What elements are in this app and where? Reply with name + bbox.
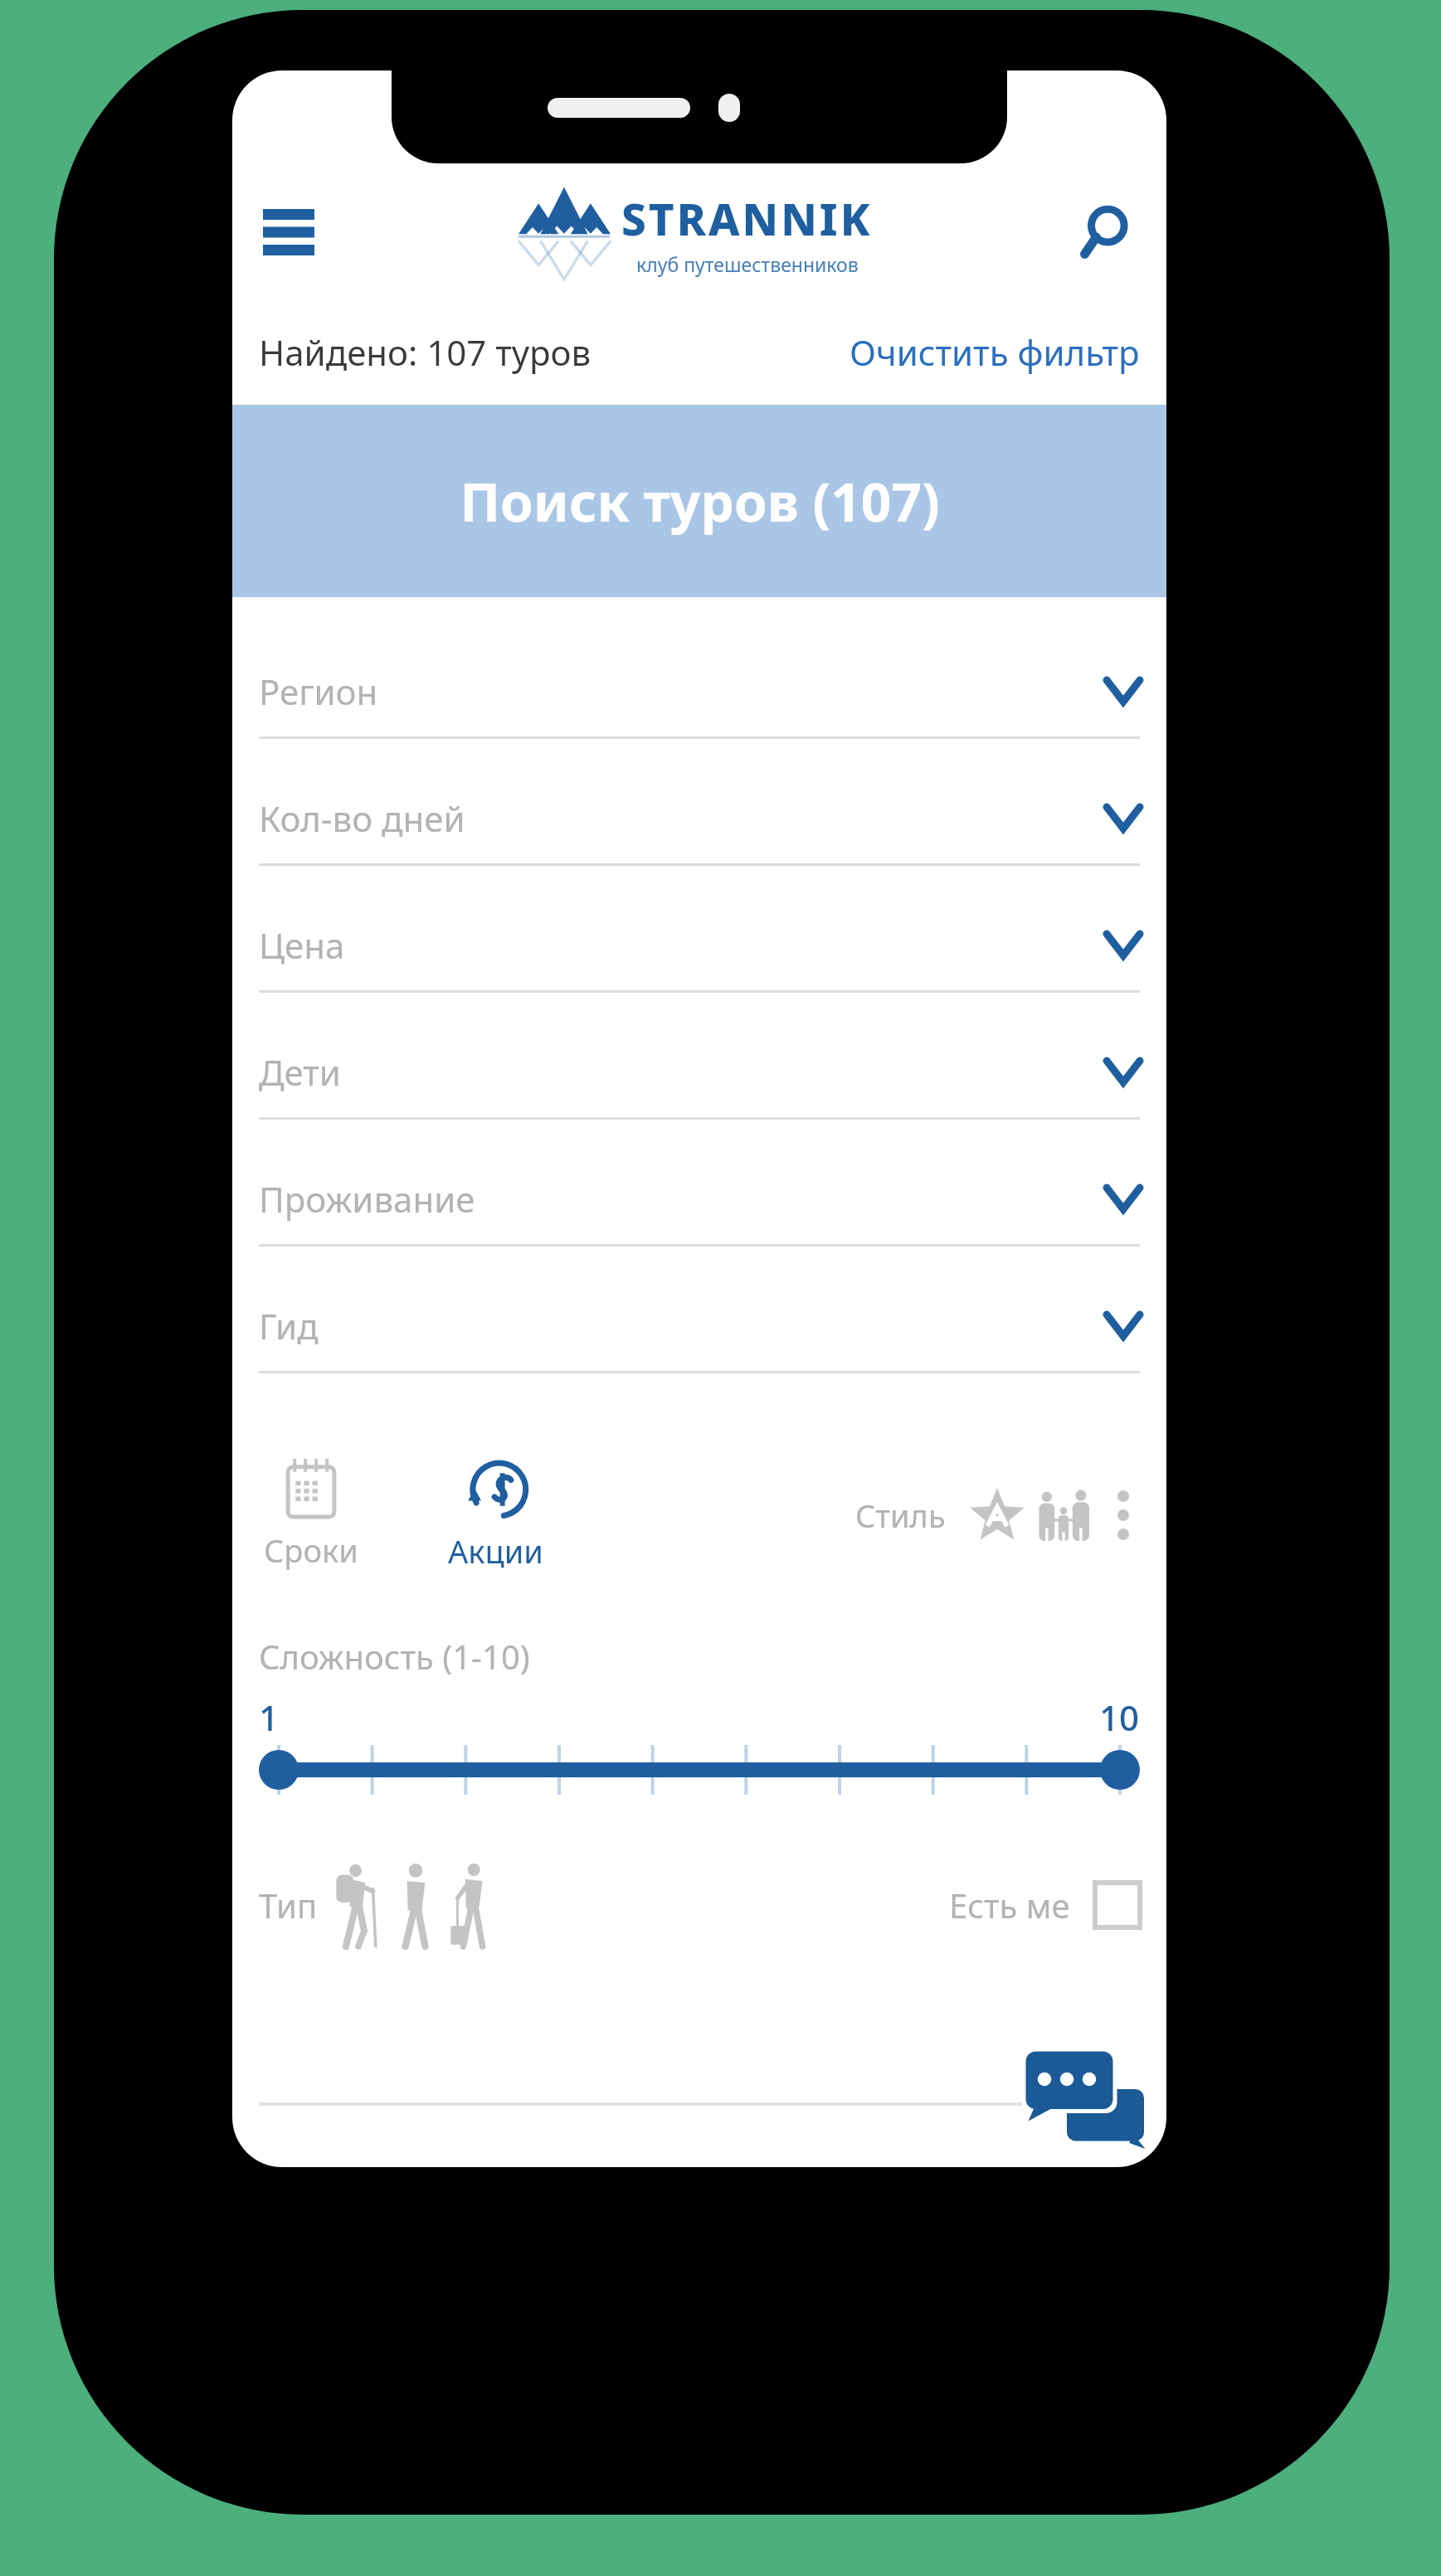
- button[interactable]: Поиск: [1062, 191, 1145, 274]
- button[interactable]: Регион: [259, 645, 1140, 772]
- button[interactable]: Тур с чемоданом: [449, 1862, 497, 1948]
- staticText: Есть ме: [949, 1883, 1070, 1927]
- staticText: STRANNIK: [621, 188, 873, 248]
- button[interactable]: Чат: [1022, 2049, 1146, 2149]
- button[interactable]: Акции: [443, 1458, 548, 1572]
- staticText: Сроки: [264, 1529, 358, 1572]
- staticText: 10: [1099, 1694, 1140, 1741]
- button[interactable]: Пеший поход: [334, 1862, 382, 1948]
- button[interactable]: Стиль семья: [1034, 1485, 1093, 1545]
- staticText: Сложность (1-10): [259, 1634, 530, 1679]
- button[interactable]: Кол-во дней: [259, 772, 1140, 899]
- button[interactable]: Есть места: [1095, 1883, 1140, 1927]
- button[interactable]: Гид: [259, 1280, 1140, 1407]
- staticText: Гид: [259, 1302, 319, 1349]
- button[interactable]: Цена: [259, 899, 1140, 1026]
- staticText: клуб путешественников: [636, 251, 859, 277]
- staticText: Цена: [259, 921, 345, 969]
- staticText: Проживание: [259, 1175, 475, 1222]
- button[interactable]: Прогулка: [394, 1862, 437, 1948]
- staticText: Акции: [448, 1529, 543, 1572]
- staticText: Поиск туров (107): [460, 465, 940, 537]
- button[interactable]: Ещё: [1107, 1485, 1140, 1545]
- button[interactable]: Сроки: [259, 1459, 363, 1572]
- staticText: Дети: [259, 1048, 341, 1096]
- button[interactable]: Очистить фильтр: [850, 328, 1140, 376]
- button[interactable]: Проживание: [259, 1153, 1140, 1280]
- button[interactable]: Дети: [259, 1026, 1140, 1153]
- button[interactable]: [259, 1742, 1140, 1797]
- staticText: Стиль: [855, 1494, 946, 1537]
- staticText: Кол-во дней: [259, 795, 465, 842]
- staticText: Регион: [259, 668, 378, 715]
- button[interactable]: Стиль звезда: [967, 1485, 1027, 1545]
- staticText: Найдено: 107 туров: [259, 328, 591, 376]
- staticText: Тип: [259, 1883, 318, 1927]
- button[interactable]: Меню: [247, 191, 330, 274]
- staticText: 1: [259, 1694, 280, 1741]
- staticText: Очистить фильтр: [850, 328, 1140, 376]
